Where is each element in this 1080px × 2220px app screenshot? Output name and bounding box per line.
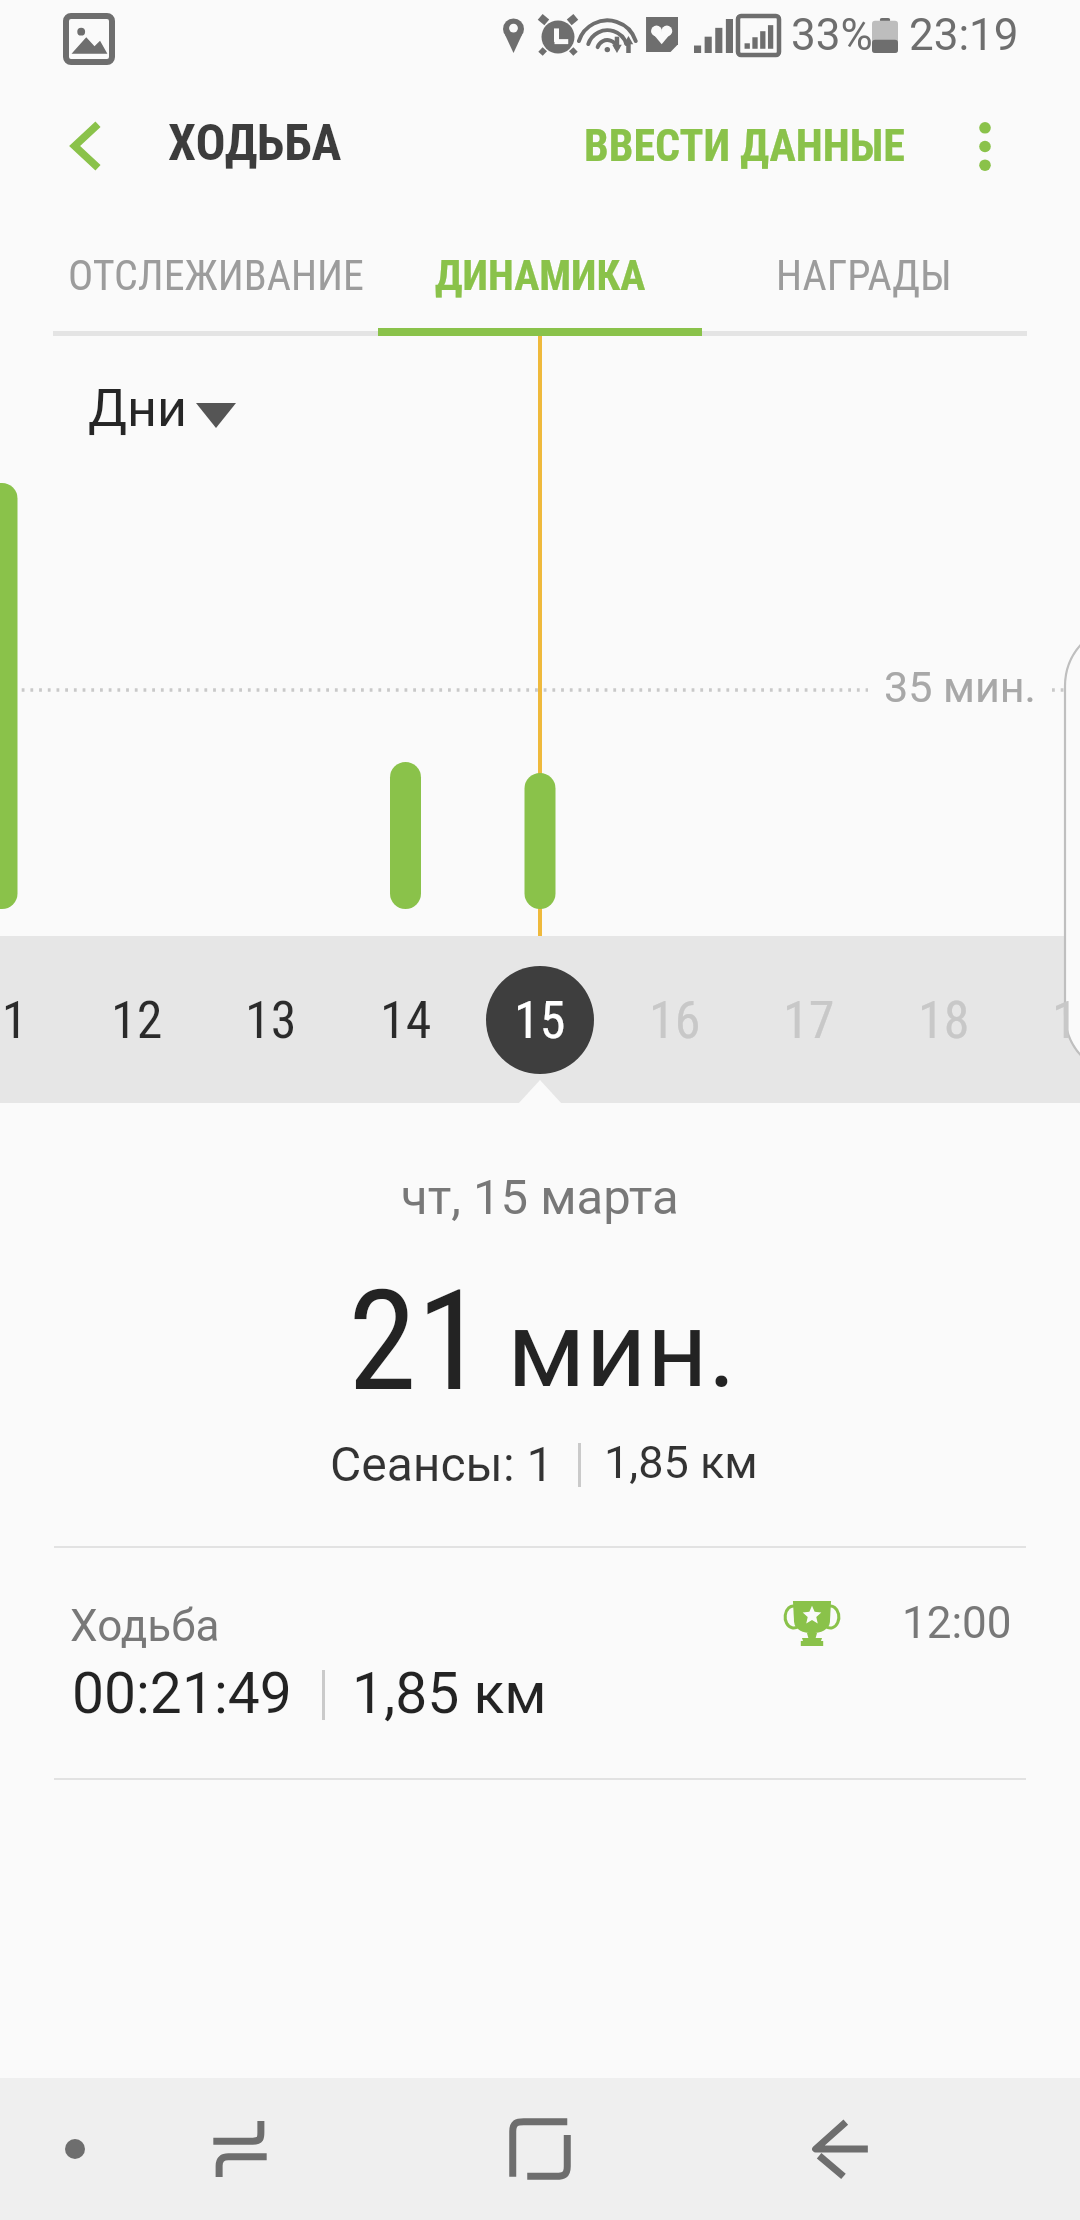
staticText: чт, 15 марта xyxy=(401,1169,679,1226)
button[interactable]: ОТСЛЕЖИВАНИЕ xyxy=(54,219,378,331)
button[interactable]: Back xyxy=(26,86,146,206)
button[interactable]: 17 xyxy=(749,989,869,1051)
staticText: 35 мин. xyxy=(884,662,1036,712)
button[interactable]: 12 xyxy=(77,989,197,1051)
button[interactable]: Menu xyxy=(10,2084,140,2214)
staticText: 14 xyxy=(380,990,432,1051)
staticText: 13 xyxy=(245,990,297,1051)
staticText: 1,85 км xyxy=(352,1660,547,1727)
staticText: НАГРАДЫ xyxy=(776,251,952,300)
staticText: Дни xyxy=(88,378,188,439)
staticText: 15 xyxy=(514,990,566,1051)
button[interactable]: ВВЕСТИ ДАННЫЕ xyxy=(556,104,932,188)
staticText: 17 xyxy=(783,990,835,1051)
button[interactable]: 18 xyxy=(884,989,1004,1051)
button[interactable]: More options xyxy=(930,91,1040,201)
staticText: мин. xyxy=(507,1288,736,1412)
staticText: 33% xyxy=(791,9,873,61)
staticText: 00:21:49 xyxy=(72,1660,292,1727)
staticText: ВВЕСТИ ДАННЫЕ xyxy=(584,120,905,172)
button[interactable]: 16 xyxy=(615,989,735,1051)
button[interactable]: 11 xyxy=(0,989,62,1051)
button[interactable]: 14 xyxy=(346,989,466,1051)
button[interactable]: 13 xyxy=(211,989,331,1051)
staticText: 11 xyxy=(0,990,28,1051)
button[interactable]: Back xyxy=(775,2084,905,2214)
staticText: ДИНАМИКА xyxy=(435,251,646,300)
staticText: 1,85 км xyxy=(604,1436,758,1489)
staticText: ХОДЬБА xyxy=(168,114,342,173)
staticText: ОТСЛЕЖИВАНИЕ xyxy=(68,251,364,300)
staticText: Ходьба xyxy=(70,1600,220,1652)
staticText: 21 xyxy=(348,1260,486,1423)
staticText: 16 xyxy=(649,990,701,1051)
staticText: Сеансы: 1 xyxy=(330,1436,554,1492)
button[interactable]: Дни xyxy=(70,372,260,450)
staticText: 23:19 xyxy=(909,9,1019,61)
staticText: 18 xyxy=(918,990,970,1051)
button[interactable]: 19 xyxy=(1018,989,1080,1051)
button[interactable]: Ходьба xyxy=(0,1548,1080,1780)
staticText: 19 xyxy=(1052,990,1080,1051)
button[interactable]: Home xyxy=(475,2084,605,2214)
button[interactable]: ДИНАМИКА xyxy=(378,219,702,331)
staticText: 12 xyxy=(111,990,163,1051)
staticText: 12:00 xyxy=(902,1597,1012,1649)
button[interactable]: Recent apps xyxy=(175,2084,305,2214)
button[interactable]: 15 xyxy=(486,966,594,1074)
button[interactable]: НАГРАДЫ xyxy=(702,219,1026,331)
